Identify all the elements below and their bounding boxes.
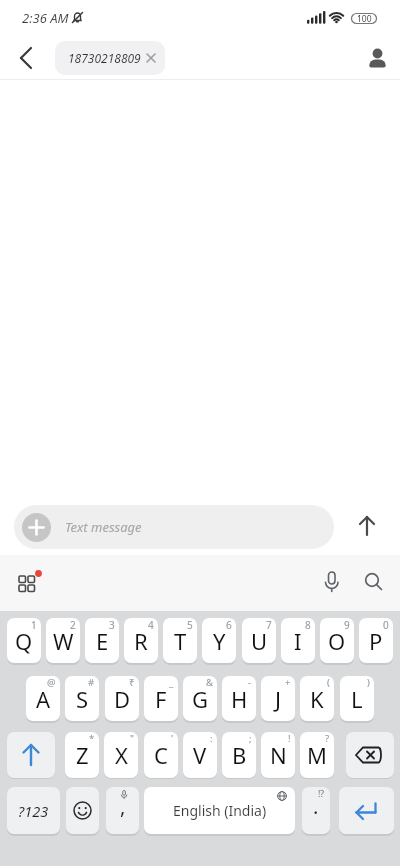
- button[interactable]: [66, 787, 99, 834]
- staticText: N: [270, 740, 287, 770]
- button[interactable]: A: [26, 676, 60, 721]
- staticText: 2: [70, 618, 76, 632]
- button[interactable]: N: [261, 732, 295, 778]
- button[interactable]: O: [320, 618, 354, 663]
- button[interactable]: W: [46, 618, 80, 663]
- staticText: 0: [383, 618, 389, 632]
- staticText: 8: [305, 618, 311, 632]
- staticText: C: [154, 740, 168, 770]
- staticText: 6: [226, 618, 232, 632]
- staticText: _: [169, 676, 174, 689]
- button[interactable]: L: [340, 676, 374, 721]
- button[interactable]: Text message: [14, 505, 334, 549]
- button[interactable]: S: [65, 676, 99, 721]
- button[interactable]: B: [222, 732, 256, 778]
- staticText: 2:36 AM: [22, 9, 69, 27]
- button[interactable]: D: [105, 676, 139, 721]
- button[interactable]: X: [104, 732, 138, 778]
- staticText: ): [367, 676, 370, 689]
- staticText: 3: [109, 618, 115, 632]
- staticText: ?: [325, 732, 330, 745]
- staticText: U: [251, 626, 268, 656]
- button[interactable]: [7, 732, 55, 778]
- staticText: Y: [213, 626, 226, 656]
- button[interactable]: Y: [202, 618, 236, 663]
- button[interactable]: [10, 566, 46, 602]
- staticText: 100: [357, 13, 372, 24]
- staticText: -: [248, 676, 252, 689]
- staticText: &: [206, 676, 213, 689]
- staticText: E: [96, 626, 109, 656]
- staticText: Q: [15, 626, 33, 656]
- button[interactable]: [12, 44, 40, 72]
- staticText: ,: [120, 793, 126, 820]
- staticText: .: [313, 793, 319, 820]
- button[interactable]: H: [222, 676, 256, 721]
- button[interactable]: [363, 42, 393, 72]
- staticText: R: [134, 626, 148, 656]
- button[interactable]: E: [85, 618, 119, 663]
- staticText: #: [88, 676, 95, 689]
- staticText: !: [288, 732, 291, 745]
- staticText: 7: [266, 618, 272, 632]
- staticText: English (India): [173, 801, 267, 820]
- staticText: W: [53, 626, 74, 656]
- button[interactable]: English (India): [144, 787, 295, 834]
- button[interactable]: ?123: [7, 787, 60, 834]
- staticText: *: [89, 732, 95, 745]
- button[interactable]: G: [183, 676, 217, 721]
- button[interactable]: ,: [106, 787, 139, 834]
- staticText: J: [275, 684, 282, 714]
- button[interactable]: [316, 566, 348, 598]
- staticText: 18730218809: [68, 50, 141, 66]
- button[interactable]: I: [281, 618, 315, 663]
- staticText: 5: [187, 618, 193, 632]
- button[interactable]: Z: [65, 732, 99, 778]
- staticText: :: [210, 732, 213, 745]
- button[interactable]: J: [261, 676, 295, 721]
- button[interactable]: [346, 732, 394, 778]
- staticText: L: [351, 684, 363, 714]
- button[interactable]: .: [302, 787, 330, 834]
- staticText: G: [192, 684, 209, 714]
- staticText: @: [47, 676, 56, 689]
- staticText: !?: [318, 788, 324, 800]
- button[interactable]: V: [183, 732, 217, 778]
- button[interactable]: [352, 511, 382, 541]
- staticText: 9: [344, 618, 350, 632]
- staticText: ?123: [18, 801, 49, 821]
- staticText: P: [369, 626, 383, 656]
- staticText: ': [171, 732, 174, 745]
- staticText: V: [193, 740, 207, 770]
- button[interactable]: K: [300, 676, 334, 721]
- button[interactable]: [339, 787, 394, 834]
- staticText: T: [174, 626, 187, 656]
- staticText: O: [328, 626, 346, 656]
- staticText: 1: [31, 618, 37, 632]
- staticText: S: [76, 684, 89, 714]
- staticText: Text message: [65, 518, 142, 536]
- staticText: A: [36, 684, 51, 714]
- staticText: ;: [249, 732, 252, 745]
- button[interactable]: [358, 566, 390, 598]
- button[interactable]: T: [163, 618, 197, 663]
- staticText: D: [114, 684, 131, 714]
- staticText: F: [155, 684, 167, 714]
- button[interactable]: C: [144, 732, 178, 778]
- staticText: +: [285, 676, 291, 689]
- staticText: Z: [76, 740, 89, 770]
- staticText: M: [307, 740, 327, 770]
- button[interactable]: R: [124, 618, 158, 663]
- button[interactable]: F: [144, 676, 178, 721]
- button[interactable]: P: [359, 618, 393, 663]
- staticText: K: [310, 684, 324, 714]
- staticText: 4: [148, 618, 154, 632]
- staticText: I: [294, 626, 302, 656]
- staticText: ₹: [129, 676, 135, 689]
- staticText: ": [130, 732, 134, 745]
- button[interactable]: M: [300, 732, 334, 778]
- button[interactable]: Q: [7, 618, 41, 663]
- button[interactable]: U: [242, 618, 276, 663]
- staticText: (: [327, 676, 330, 689]
- button[interactable]: 18730218809: [55, 41, 165, 75]
